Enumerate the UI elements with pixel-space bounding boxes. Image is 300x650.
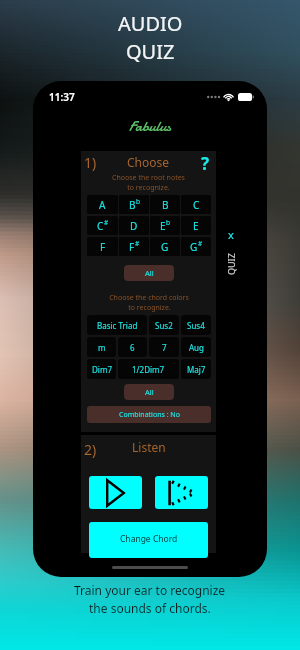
button[interactable]: Dim7	[87, 359, 116, 379]
button[interactable]: All	[124, 384, 174, 400]
staticText: All	[145, 387, 154, 397]
staticText: ?	[201, 152, 210, 170]
staticText: All	[145, 268, 154, 278]
staticText: 6	[130, 342, 135, 353]
staticText: B	[162, 198, 169, 212]
button[interactable]: QUIZ	[220, 250, 242, 278]
staticText: Choose the chord colors	[109, 293, 189, 303]
staticText: to recognize.	[127, 183, 170, 193]
button[interactable]: A	[87, 195, 118, 214]
button[interactable]: Play arpeggio	[155, 476, 208, 509]
staticText: Change Chord	[120, 533, 178, 545]
staticText: Listen	[132, 439, 166, 455]
staticText: Fabulus	[129, 116, 172, 137]
staticText: Train your ear to recognize	[74, 582, 226, 598]
staticText: B	[129, 198, 136, 212]
staticText: Maj7	[187, 364, 206, 375]
staticText: F	[100, 240, 106, 254]
button[interactable]: All	[124, 265, 174, 281]
button[interactable]: C	[87, 216, 118, 235]
button[interactable]: Sus2	[149, 315, 179, 335]
staticText: A	[99, 198, 106, 212]
staticText: C	[97, 219, 104, 233]
staticText: E	[193, 219, 199, 233]
button[interactable]: G	[150, 237, 180, 256]
staticText: AUDIO	[118, 10, 183, 37]
staticText: C	[193, 198, 200, 212]
button[interactable]: 1/2Dim7	[118, 359, 179, 379]
button[interactable]: Play chord	[89, 476, 142, 509]
button[interactable]: m	[87, 337, 116, 357]
button[interactable]: Sus4	[181, 315, 211, 335]
button[interactable]: G	[181, 237, 211, 256]
button[interactable]: E	[181, 216, 211, 235]
button[interactable]: Close quiz	[220, 223, 242, 245]
staticText: the sounds of chords.	[89, 600, 211, 616]
button[interactable]: Basic Triad	[87, 315, 147, 335]
staticText: G	[190, 240, 198, 254]
staticText: D	[130, 219, 138, 233]
staticText: x	[228, 227, 234, 242]
staticText: Aug	[189, 342, 204, 353]
staticText: E	[160, 219, 166, 233]
staticText: Combinations : No	[119, 410, 180, 420]
staticText: Choose the root notes	[112, 173, 185, 183]
button[interactable]: C	[181, 195, 211, 214]
staticText: Basic Triad	[97, 320, 138, 331]
staticText: #	[198, 239, 203, 248]
staticText: Dim7	[92, 364, 112, 375]
staticText: 11:37	[49, 90, 75, 104]
button[interactable]: Aug	[181, 337, 211, 357]
staticText: 7	[162, 342, 167, 353]
button[interactable]: Help	[198, 152, 212, 170]
staticText: Choose	[127, 154, 170, 170]
staticText: Sus2	[155, 320, 173, 331]
staticText: 2)	[84, 440, 97, 459]
staticText: 1)	[84, 153, 97, 172]
staticText: QUIZ	[225, 253, 237, 275]
staticText: m	[98, 342, 106, 353]
button[interactable]: Maj7	[181, 359, 211, 379]
button[interactable]: B	[119, 195, 149, 214]
staticText: 1/2Dim7	[132, 364, 165, 375]
staticText: #	[135, 239, 140, 248]
button[interactable]: Change Chord	[89, 522, 208, 558]
button[interactable]: 7	[149, 337, 179, 357]
button[interactable]: D	[119, 216, 149, 235]
staticText: to recognize.	[128, 303, 171, 313]
button[interactable]: F	[87, 237, 118, 256]
staticText: QUIZ	[126, 38, 175, 65]
button[interactable]: F	[119, 237, 149, 256]
staticText: G	[161, 240, 169, 254]
staticText: Sus4	[187, 320, 205, 331]
button[interactable]: B	[150, 195, 180, 214]
button[interactable]: 6	[118, 337, 147, 357]
staticText: F	[129, 240, 135, 254]
staticText: b	[136, 197, 140, 206]
staticText: b	[166, 218, 170, 227]
button[interactable]: E	[150, 216, 180, 235]
button[interactable]: Combinations : No	[87, 406, 211, 423]
staticText: #	[104, 218, 109, 227]
